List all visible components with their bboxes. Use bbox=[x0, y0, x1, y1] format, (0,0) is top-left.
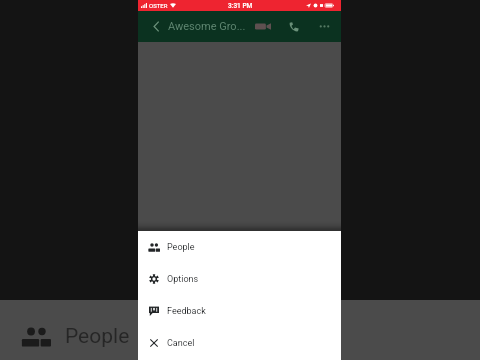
staticText: 3:31 PM bbox=[228, 2, 253, 10]
staticText: Feedback bbox=[167, 306, 206, 317]
button[interactable]: Back bbox=[138, 11, 166, 42]
button[interactable]: Options bbox=[138, 263, 341, 295]
button[interactable]: People bbox=[0, 300, 138, 360]
button[interactable]: Video call bbox=[248, 11, 278, 42]
staticText: Awesome Gro... bbox=[168, 20, 246, 33]
staticText: People bbox=[65, 324, 130, 349]
button[interactable]: More options bbox=[309, 11, 339, 42]
staticText: People bbox=[167, 242, 195, 253]
button[interactable]: Feedback bbox=[138, 295, 341, 327]
button[interactable]: People bbox=[138, 231, 341, 263]
staticText: OSTER bbox=[149, 2, 168, 9]
button[interactable]: Cancel bbox=[138, 327, 341, 359]
button[interactable]: Call bbox=[278, 11, 309, 42]
staticText: Options bbox=[167, 274, 199, 285]
staticText: Cancel bbox=[167, 338, 195, 349]
